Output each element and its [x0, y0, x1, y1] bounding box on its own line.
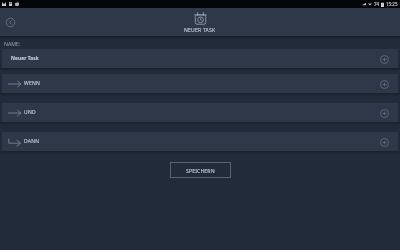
button[interactable]: Add	[377, 106, 391, 120]
staticText: WENN	[24, 80, 41, 87]
button[interactable]: DANN	[2, 132, 398, 151]
button[interactable]: UND	[2, 103, 398, 122]
button[interactable]: Neuer Task	[2, 49, 398, 68]
staticText: 15:25	[386, 1, 398, 7]
button[interactable]: Add	[377, 77, 391, 91]
staticText: NAME:	[4, 40, 21, 47]
staticText: NEUER TASK	[184, 27, 216, 34]
button[interactable]: WENN	[2, 74, 398, 93]
staticText: UND	[24, 109, 36, 116]
button[interactable]: Add	[377, 135, 391, 149]
staticText: DANN	[24, 138, 40, 145]
staticText: 74	[374, 1, 380, 7]
staticText: SPEICHERN	[186, 167, 215, 174]
staticText: Neuer Task	[11, 55, 39, 62]
button[interactable]: SPEICHERN	[170, 162, 231, 178]
button[interactable]: Back	[2, 14, 18, 30]
button[interactable]: Add	[377, 52, 391, 66]
